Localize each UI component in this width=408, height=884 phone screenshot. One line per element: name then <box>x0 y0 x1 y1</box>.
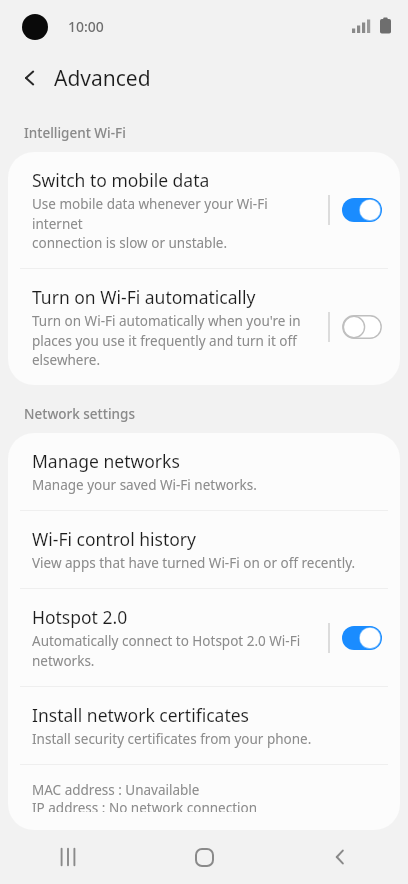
staticText: Wi-Fi control history <box>32 527 196 551</box>
button[interactable]: Wi-Fi control history <box>8 511 400 588</box>
staticText: Network settings <box>24 405 135 423</box>
staticText: Install network certificates <box>32 703 249 727</box>
staticText: Manage your saved Wi-Fi networks. <box>32 476 257 494</box>
staticText: Hotspot 2.0 <box>32 605 128 629</box>
button[interactable]: Turn on Wi-Fi automatically <box>8 269 400 385</box>
staticText: MAC address : Unavailable <box>32 781 200 799</box>
staticText: Install security certificates from your … <box>32 730 312 748</box>
staticText: Switch to mobile data <box>32 168 210 192</box>
button[interactable]: Home <box>136 830 272 884</box>
button[interactable]: Hotspot 2.0 <box>8 589 400 686</box>
staticText: Turn on Wi-Fi automatically <box>32 285 256 309</box>
staticText: 10:00 <box>68 17 104 36</box>
staticText: Advanced <box>54 64 151 93</box>
button[interactable]: Install network certificates <box>8 687 400 764</box>
staticText: Turn on Wi-Fi automatically when you're … <box>32 312 301 369</box>
button[interactable]: Off <box>342 315 382 339</box>
button[interactable]: Back <box>8 56 52 100</box>
staticText: View apps that have turned Wi-Fi on or o… <box>32 554 356 572</box>
staticText: Use mobile data whenever your Wi-Fi inte… <box>32 195 320 252</box>
button[interactable]: Switch to mobile data <box>8 152 400 268</box>
button[interactable]: Recents <box>0 830 136 884</box>
staticText: IP address : No network connection <box>32 799 258 812</box>
button[interactable]: Manage networks <box>8 433 400 510</box>
staticText: Automatically connect to Hotspot 2.0 Wi-… <box>32 632 301 670</box>
button[interactable]: On <box>342 198 382 222</box>
staticText: Manage networks <box>32 449 180 473</box>
staticText: Intelligent Wi-Fi <box>24 124 126 142</box>
button[interactable]: Back <box>272 830 408 884</box>
button[interactable]: On <box>342 626 382 650</box>
